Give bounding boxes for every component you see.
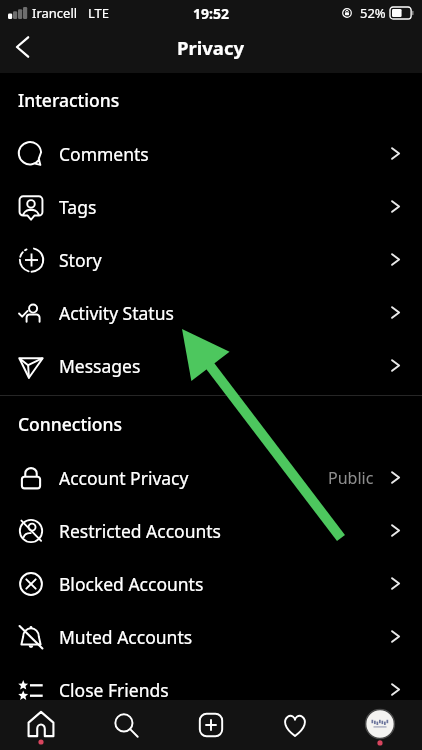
- button[interactable]: Create: [186, 700, 236, 750]
- staticText: Tags: [59, 195, 97, 219]
- staticText: Interactions: [18, 88, 120, 112]
- staticText: Blocked Accounts: [59, 572, 204, 596]
- button[interactable]: Restricted Accounts: [0, 504, 422, 557]
- button[interactable]: Muted Accounts: [0, 610, 422, 663]
- button[interactable]: Tags: [0, 180, 422, 233]
- button[interactable]: Blocked Accounts: [0, 557, 422, 610]
- staticText: Restricted Accounts: [59, 519, 221, 543]
- button[interactable]: Story: [0, 233, 422, 286]
- button[interactable]: Search: [101, 700, 151, 750]
- button[interactable]: Comments: [0, 127, 422, 180]
- staticText: Story: [59, 248, 102, 272]
- staticText: Privacy: [177, 35, 245, 60]
- staticText: Account Privacy: [59, 466, 189, 490]
- button[interactable]: Activity: [270, 700, 320, 750]
- staticText: Comments: [59, 142, 149, 166]
- button[interactable]: Back: [0, 28, 44, 72]
- button[interactable]: Profile: [355, 700, 405, 750]
- staticText: 52%: [360, 4, 386, 22]
- button[interactable]: Messages: [0, 339, 422, 392]
- button[interactable]: Close Friends: [0, 663, 422, 716]
- staticText: Close Friends: [59, 678, 169, 702]
- staticText: LTE: [88, 4, 110, 22]
- staticText: 19:52: [193, 4, 229, 23]
- staticText: Public: [328, 467, 374, 489]
- staticText: Connections: [18, 412, 122, 436]
- button[interactable]: Home: [16, 700, 66, 750]
- staticText: Messages: [59, 354, 141, 378]
- staticText: Activity Status: [59, 301, 174, 325]
- button[interactable]: Activity Status: [0, 286, 422, 339]
- staticText: Irancell: [32, 4, 78, 22]
- button[interactable]: Account Privacy: [0, 451, 422, 504]
- staticText: Muted Accounts: [59, 625, 193, 649]
